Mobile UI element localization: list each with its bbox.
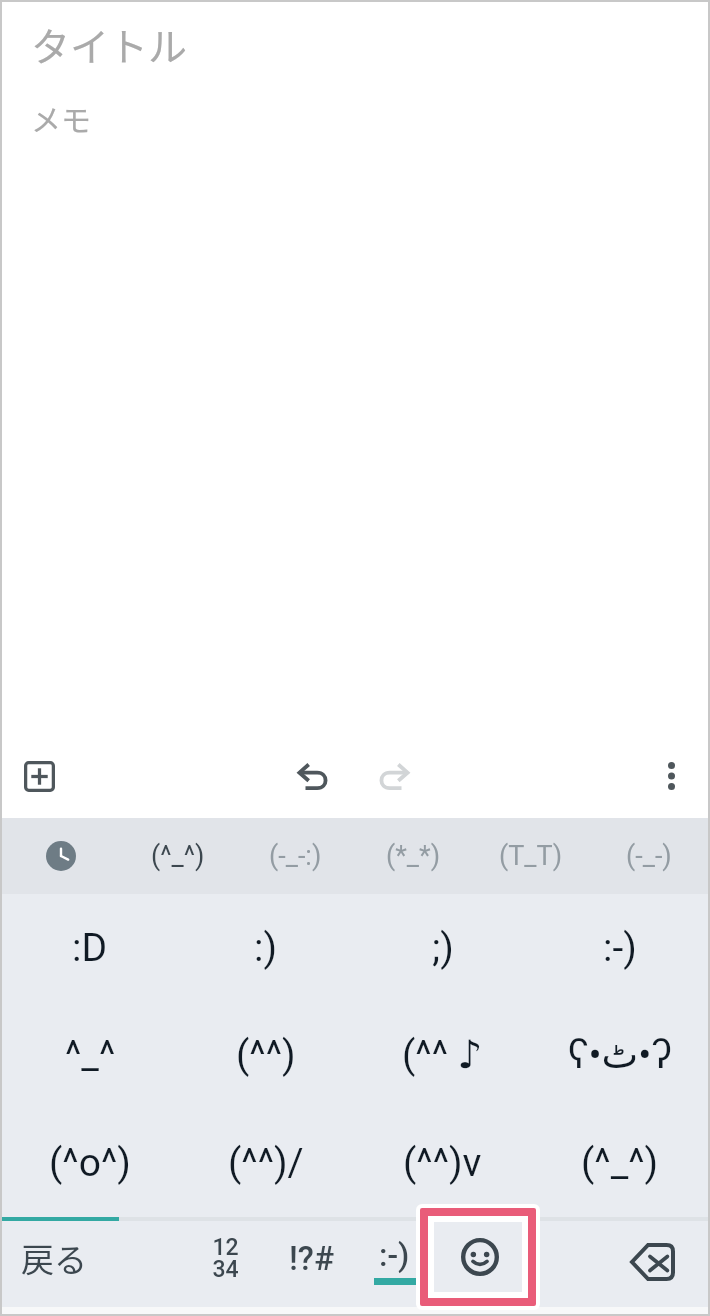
staticText: :-) bbox=[603, 925, 637, 971]
staticText: (-_-:) bbox=[269, 840, 322, 872]
button[interactable]: (^_^) bbox=[531, 1109, 708, 1217]
button[interactable]: Backspace bbox=[602, 1221, 702, 1307]
staticText: 戻る bbox=[21, 1234, 87, 1282]
button[interactable]: 12 34 bbox=[182, 1221, 268, 1307]
staticText: (^_^) bbox=[151, 840, 205, 872]
button[interactable]: ʕ•ٹ•ʔ bbox=[531, 1001, 708, 1109]
staticText: (^^) bbox=[236, 1032, 296, 1078]
button[interactable]: (^^)/ bbox=[178, 1109, 354, 1217]
staticText: (*_*) bbox=[386, 840, 441, 872]
button[interactable]: (*_*) bbox=[354, 818, 472, 894]
button[interactable]: (^^) bbox=[178, 1001, 354, 1109]
staticText: (^^)v bbox=[403, 1140, 482, 1186]
button[interactable]: Add bbox=[2, 742, 78, 818]
staticText: (-_-) bbox=[626, 840, 672, 872]
button[interactable]: More options bbox=[632, 742, 710, 818]
button[interactable]: (^^)v bbox=[354, 1109, 531, 1217]
button[interactable]: Undo bbox=[269, 742, 359, 818]
staticText: 12 34 bbox=[212, 1234, 239, 1282]
button[interactable]: :D bbox=[2, 894, 178, 1001]
staticText: ;) bbox=[432, 925, 454, 971]
button[interactable]: ;) bbox=[354, 894, 531, 1001]
button[interactable]: !?# bbox=[273, 1221, 353, 1307]
staticText: :-) bbox=[379, 1236, 410, 1274]
staticText: (T_T) bbox=[499, 840, 563, 872]
staticText: (^_^) bbox=[581, 1140, 659, 1186]
button[interactable]: (-_-:) bbox=[236, 818, 354, 894]
staticText: ^_^ bbox=[65, 1032, 116, 1078]
staticText: (^^ ♪ bbox=[402, 1032, 483, 1078]
button[interactable]: (^_^) bbox=[119, 818, 236, 894]
button[interactable]: タイトル bbox=[2, 2, 708, 742]
button[interactable]: :-) bbox=[531, 894, 708, 1001]
button[interactable]: (^^ ♪ bbox=[354, 1001, 531, 1109]
staticText: !?# bbox=[289, 1239, 335, 1278]
button[interactable]: Redo bbox=[348, 742, 438, 818]
staticText: ʕ•ٹ•ʔ bbox=[568, 1032, 672, 1078]
button[interactable]: (-_-) bbox=[590, 818, 708, 894]
staticText: タイトル bbox=[31, 16, 188, 72]
staticText: (^^)/ bbox=[228, 1140, 304, 1186]
staticText: :) bbox=[254, 925, 278, 971]
button[interactable]: (^o^) bbox=[2, 1109, 178, 1217]
button[interactable]: 戻る bbox=[2, 1221, 172, 1307]
button[interactable]: (T_T) bbox=[472, 818, 590, 894]
button[interactable]: :) bbox=[178, 894, 354, 1001]
button[interactable]: Emoji bbox=[438, 1221, 518, 1307]
button[interactable]: :-) bbox=[357, 1221, 437, 1307]
staticText: メモ bbox=[31, 96, 91, 139]
button[interactable]: ^_^ bbox=[2, 1001, 178, 1109]
staticText: :D bbox=[72, 925, 108, 971]
button[interactable]: Recent bbox=[2, 818, 119, 894]
staticText: (^o^) bbox=[49, 1140, 131, 1186]
